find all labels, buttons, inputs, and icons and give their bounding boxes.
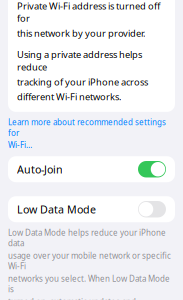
button[interactable]: Auto-Join [8,156,175,182]
staticText: networks you select. When Low Data Mode … [8,273,170,294]
staticText: usage over your mobile network or specif… [8,250,171,271]
staticText: Low Data Mode helps reduce your iPhone d… [8,227,166,248]
button[interactable]: Learn more about recommended settings fo… [0,112,183,156]
staticText: this network by your provider. [17,27,146,39]
staticText: Auto-Join [17,162,63,176]
staticText: different Wi-Fi networks. [17,90,122,103]
staticText: Private Wi-Fi address is turned off for [17,0,160,24]
staticText: Using a private address helps reduce [17,48,142,73]
staticText: turned on, automatic updates and backgro… [8,296,136,300]
staticText: Wi-Fi… [8,140,32,150]
staticText: tracking of your iPhone across [17,76,148,88]
staticText: Low Data Mode [17,202,96,216]
staticText: Learn more about recommended settings fo… [8,117,166,138]
button[interactable]: Low Data Mode [8,196,175,222]
